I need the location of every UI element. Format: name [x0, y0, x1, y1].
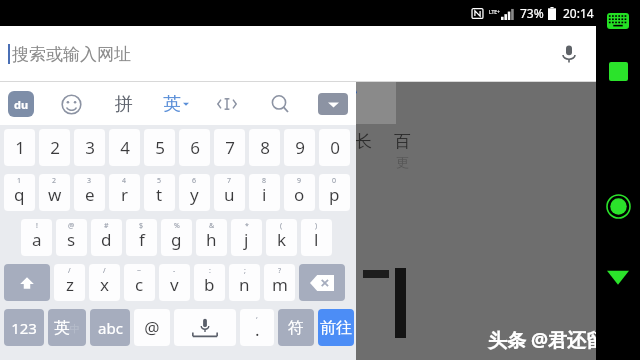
button[interactable]: $	[126, 219, 157, 256]
button[interactable]: Baidu IME	[8, 91, 34, 117]
staticText: m	[272, 273, 288, 296]
button[interactable]: Back	[603, 262, 633, 292]
button[interactable]: Recent apps	[603, 56, 633, 86]
staticText: 4	[120, 136, 130, 159]
button[interactable]: 前往	[318, 309, 354, 346]
button[interactable]: ?	[264, 264, 295, 301]
button[interactable]: 拼	[107, 87, 141, 121]
staticText: 0	[330, 136, 340, 159]
staticText: 搜索或输入网址	[12, 44, 131, 65]
button[interactable]: /	[54, 264, 85, 301]
button[interactable]: -	[159, 264, 190, 301]
staticText: 拼	[115, 93, 133, 116]
button[interactable]: )	[301, 219, 332, 256]
button[interactable]: 1	[4, 129, 35, 166]
staticText: 0	[332, 176, 337, 186]
button[interactable]: 0	[319, 174, 350, 211]
staticText: t	[156, 183, 163, 206]
staticText: 英	[54, 318, 70, 338]
button[interactable]: 7	[214, 174, 245, 211]
staticText: s	[67, 228, 76, 251]
staticText: LTE+	[489, 9, 500, 16]
button[interactable]: Hide keyboard	[603, 6, 633, 36]
button[interactable]: 2	[39, 174, 70, 211]
button[interactable]: 英	[163, 87, 189, 121]
button[interactable]: ,	[240, 309, 274, 346]
staticText: 8	[260, 136, 270, 159]
button[interactable]: Home	[602, 190, 634, 222]
staticText: g	[171, 228, 182, 251]
button[interactable]: @	[56, 219, 87, 256]
button[interactable]: /	[89, 264, 120, 301]
button[interactable]: 8	[249, 174, 280, 211]
staticText: :	[209, 266, 211, 276]
button[interactable]: %	[161, 219, 192, 256]
staticText: h	[206, 228, 217, 251]
staticText: *	[245, 221, 249, 231]
button[interactable]: 7	[214, 129, 245, 166]
staticText: ;	[244, 266, 246, 276]
staticText: 2	[50, 136, 60, 159]
button[interactable]: *	[231, 219, 262, 256]
staticText: ~	[137, 266, 142, 276]
staticText: @	[68, 221, 75, 231]
staticText: 5	[157, 176, 162, 186]
staticText: w	[48, 183, 62, 206]
button[interactable]: 5	[144, 174, 175, 211]
staticText: p	[329, 183, 340, 206]
staticText: x	[100, 273, 109, 296]
button[interactable]: 搜索或输入网址	[0, 26, 596, 82]
staticText: -	[173, 266, 176, 276]
button[interactable]: &	[196, 219, 227, 256]
button[interactable]: #	[91, 219, 122, 256]
button[interactable]: 0	[319, 129, 350, 166]
button[interactable]: Voice search	[552, 37, 586, 71]
button[interactable]: ;	[229, 264, 260, 301]
button[interactable]: 符	[278, 309, 314, 346]
staticText: 更	[396, 154, 409, 170]
staticText: 3	[85, 136, 95, 159]
button[interactable]: 6	[179, 129, 210, 166]
button[interactable]: Emoji	[56, 89, 86, 119]
button[interactable]: abc	[90, 309, 130, 346]
button[interactable]: 5	[144, 129, 175, 166]
staticText: @	[144, 316, 160, 339]
button[interactable]: 1	[4, 174, 35, 211]
button[interactable]	[299, 264, 345, 301]
button[interactable]	[4, 264, 50, 301]
button[interactable]: @	[134, 309, 170, 346]
staticText: 前往	[320, 318, 352, 338]
button[interactable]	[174, 309, 236, 346]
staticText: j	[244, 228, 249, 251]
button[interactable]: 3	[74, 129, 105, 166]
staticText: 6	[190, 136, 200, 159]
button[interactable]: 6	[179, 174, 210, 211]
button[interactable]: 英	[48, 309, 86, 346]
button[interactable]: (	[266, 219, 297, 256]
button[interactable]: 4	[109, 174, 140, 211]
staticText: )	[315, 221, 318, 231]
staticText: 9	[295, 136, 305, 159]
button[interactable]: 123	[4, 309, 44, 346]
button[interactable]: 9	[284, 174, 315, 211]
button[interactable]: 4	[109, 129, 140, 166]
button[interactable]: :	[194, 264, 225, 301]
staticText: 7	[225, 136, 235, 159]
staticText: ?	[278, 266, 282, 276]
staticText: 123	[11, 318, 37, 338]
button[interactable]: ~	[124, 264, 155, 301]
staticText: 8	[262, 176, 267, 186]
staticText: (	[280, 221, 283, 231]
staticText: 5	[155, 136, 165, 159]
staticText: 中	[70, 322, 80, 335]
button[interactable]: 8	[249, 129, 280, 166]
button[interactable]: 3	[74, 174, 105, 211]
staticText: d	[101, 228, 112, 251]
button[interactable]: 9	[284, 129, 315, 166]
staticText: 2	[52, 176, 57, 186]
button[interactable]: 2	[39, 129, 70, 166]
button[interactable]: Hide keyboard	[318, 93, 348, 115]
button[interactable]: Move cursor	[211, 88, 243, 120]
button[interactable]: !	[21, 219, 52, 256]
button[interactable]: Search	[264, 88, 296, 120]
